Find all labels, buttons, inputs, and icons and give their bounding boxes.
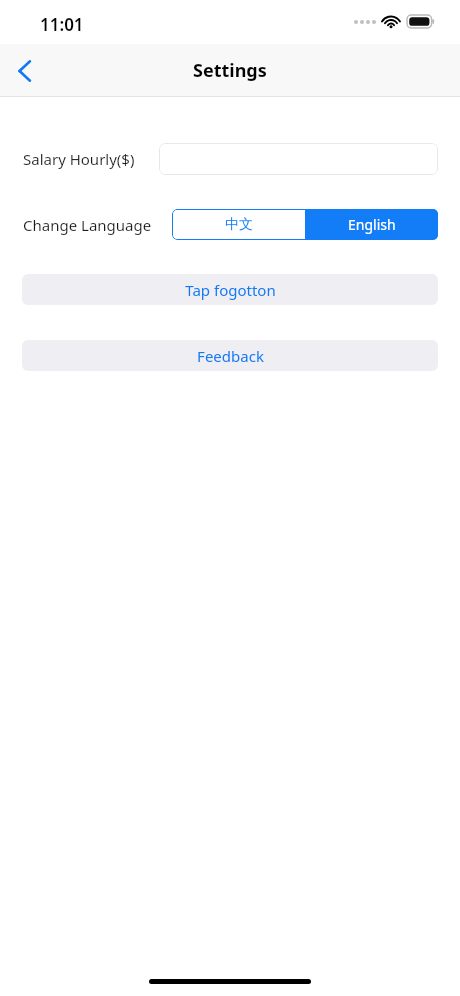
button[interactable]: 中文 [172, 209, 305, 240]
staticText: Settings [193, 58, 267, 83]
button[interactable] [159, 143, 438, 175]
button[interactable]: Feedback [22, 340, 438, 371]
staticText: 中文 [225, 216, 253, 234]
button[interactable]: Tap fogotton [22, 274, 438, 305]
staticText: Change Language [23, 215, 152, 235]
staticText: Tap fogotton [185, 280, 276, 300]
button[interactable]: Back [2, 44, 46, 97]
staticText: English [348, 215, 396, 234]
staticText: 11:01 [40, 13, 84, 36]
staticText: Salary Hourly($) [23, 149, 135, 169]
staticText: Feedback [197, 346, 264, 366]
button[interactable]: English [305, 209, 438, 240]
